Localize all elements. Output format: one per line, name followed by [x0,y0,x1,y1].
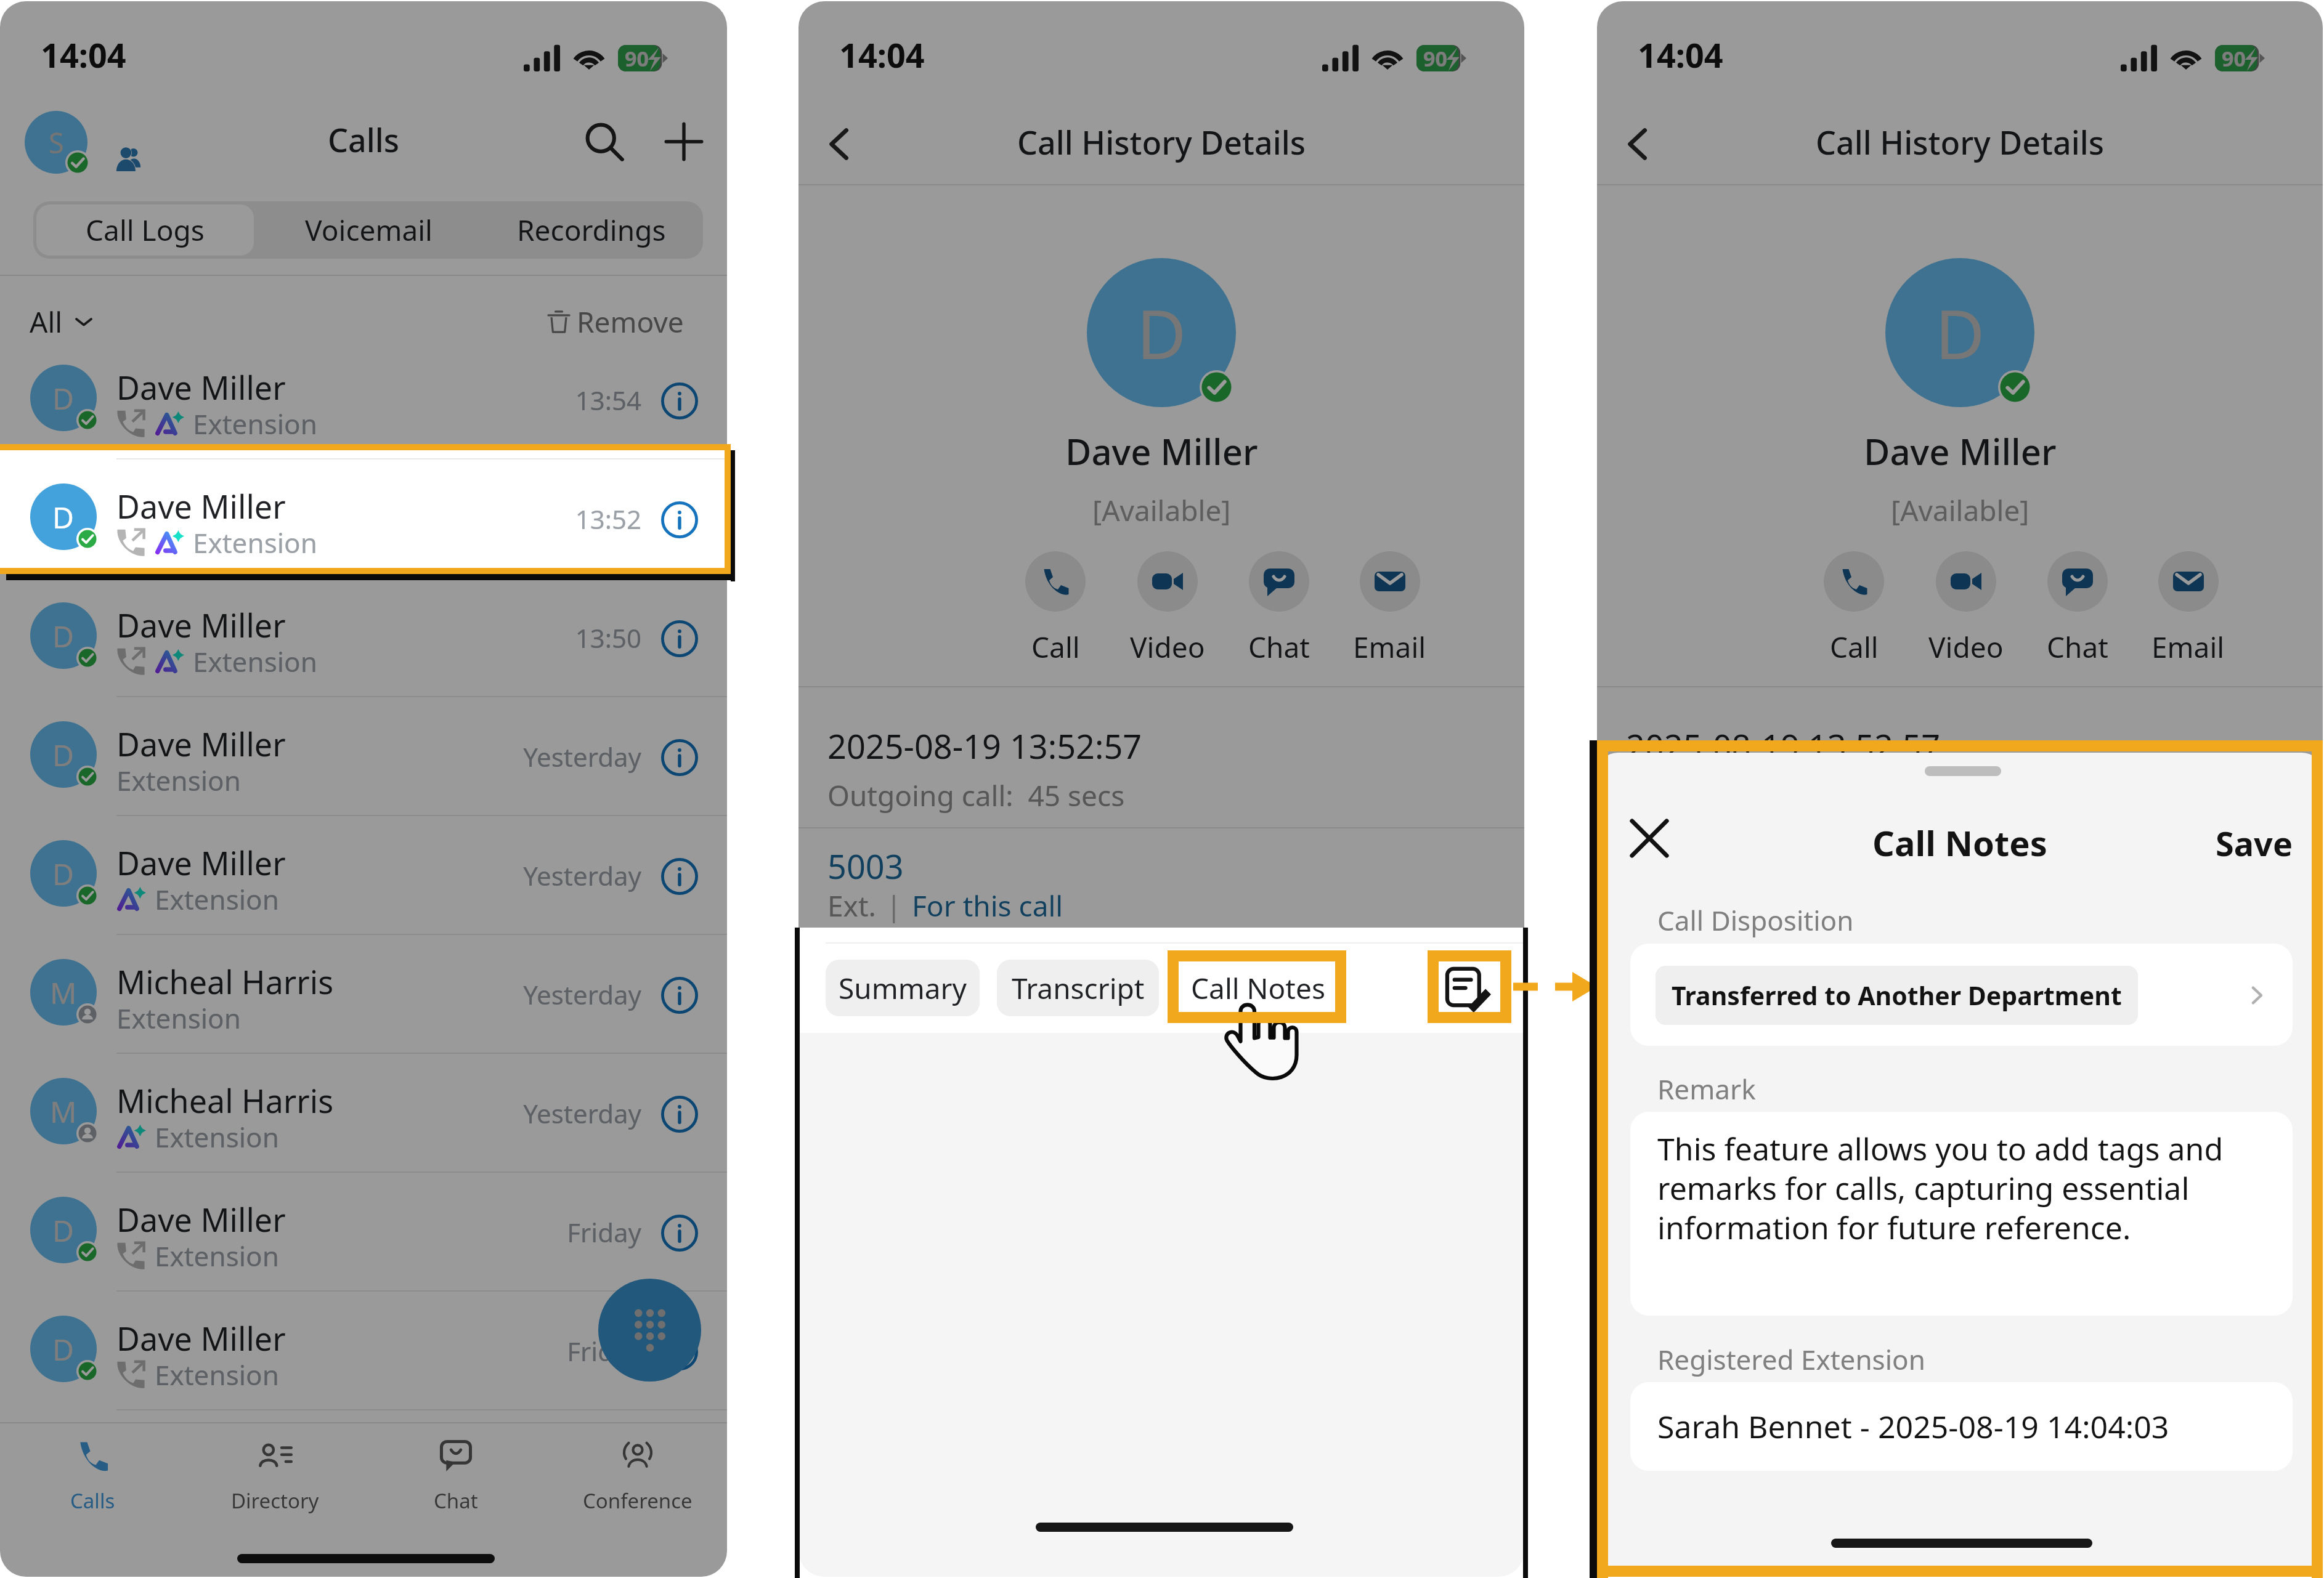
staticText: 13:54 [575,382,641,418]
button[interactable]: For this call [1710,886,1862,925]
staticText: 90 [1423,44,1447,71]
button[interactable]: D [0,459,727,578]
button[interactable]: Add [662,119,706,164]
button[interactable]: Video [1106,551,1229,666]
button[interactable]: This feature allows you to add tags and … [1630,1112,2293,1316]
staticText: For this call [1710,886,1862,925]
button[interactable]: Voicemail [260,204,477,256]
staticText: Dave Miller [116,1316,286,1360]
button[interactable]: Back [1614,119,1664,169]
staticText: Chat [1248,628,1310,666]
staticText: Extension [155,881,279,916]
button[interactable]: D [0,1173,727,1292]
staticText: Dave Miller [1864,427,2057,475]
button[interactable]: Call details [661,977,698,1014]
button[interactable]: Transcript [997,960,1159,1016]
staticText: Call Notes [1872,819,2047,866]
staticText: Conference [583,1487,693,1515]
staticText: D [52,378,75,418]
button[interactable]: Edit call notes [1433,955,1503,1025]
button[interactable]: Call Notes [1176,960,1340,1016]
button[interactable]: Remove [545,299,684,344]
staticText: Chat [2047,628,2108,666]
button[interactable]: Directory [207,1439,343,1544]
staticText: Dave Miller [116,722,286,766]
staticText: Yesterday [523,977,641,1012]
button[interactable]: Call details [661,620,698,657]
staticText: Remove [577,302,684,341]
staticText: D [52,616,75,656]
button[interactable]: Recordings [483,204,700,256]
button[interactable]: Email [1328,551,1451,666]
staticText: Call [1830,628,1879,666]
button[interactable]: Call Logs [36,204,254,256]
button[interactable]: Conference [570,1439,705,1544]
button[interactable]: Contacts [110,140,147,177]
staticText: Micheal Harris [116,960,334,1003]
staticText: Transferred to Another Department [1672,978,2122,1013]
button[interactable]: M [0,1054,727,1173]
button[interactable]: For this call [912,886,1063,925]
button[interactable]: Call details [661,382,698,419]
staticText: Ext. [1626,886,1675,925]
staticText: Extension [116,762,241,798]
button[interactable]: D [0,1292,727,1410]
button[interactable]: D [0,341,727,459]
button[interactable]: Call details [661,1096,698,1133]
button[interactable]: Chat [2016,551,2139,666]
staticText: Yesterday [523,858,641,893]
staticText: 13:52 [575,501,641,536]
staticText: D [1935,286,1985,379]
button[interactable]: D [0,578,727,697]
staticText: D [1137,286,1187,379]
button[interactable]: Video [1904,551,2028,666]
staticText: D [52,1210,75,1250]
staticText: Yesterday [523,1096,641,1131]
staticText: All [30,302,63,341]
staticText: Extension [193,643,317,679]
staticText: This feature allows you to add tags and … [1657,1128,2237,1248]
button[interactable]: Transferred to Another Department [1630,944,2293,1046]
button[interactable]: Summary [826,960,980,1016]
button[interactable]: Back [816,119,865,169]
staticText: Extension [155,1119,279,1154]
button[interactable]: D [0,697,727,816]
staticText: Dave Miller [116,484,286,528]
button[interactable]: Call details [661,1333,698,1370]
button[interactable]: All [30,299,96,344]
button[interactable]: Call details [661,1215,698,1252]
button[interactable]: Call details [661,501,698,538]
staticText: Call History Details [1816,120,2105,164]
button[interactable]: Call [994,551,1117,666]
staticText: Calls [328,118,400,161]
staticText: | [1684,886,1700,925]
staticText: 13:50 [575,620,641,655]
button[interactable]: Save [2182,820,2293,866]
button[interactable]: Email [2126,551,2249,666]
staticText: Save [2216,820,2293,866]
button[interactable]: Chat [388,1439,524,1544]
button[interactable]: D [0,816,727,935]
button[interactable]: Chat [1217,551,1341,666]
staticText: Extension [193,524,317,560]
staticText: Calls [70,1487,115,1515]
staticText: Extension [155,1237,279,1273]
staticText: Summary [839,969,967,1008]
staticText: 14:04 [41,32,126,78]
staticText: Email [1353,628,1426,666]
button[interactable]: Search [582,119,627,164]
staticText: Dave Miller [116,1197,286,1241]
button[interactable]: Call [1792,551,1916,666]
staticText: Email [2151,628,2225,666]
staticText: 5003 [1626,843,1702,889]
button[interactable]: Dialpad [598,1279,701,1382]
staticText: Voicemail [305,211,433,249]
staticText: Call Logs [86,211,205,249]
button[interactable]: Close [1627,815,1672,861]
staticText: S [49,124,64,161]
button[interactable]: M [0,935,727,1054]
staticText: Friday [567,1215,641,1250]
button[interactable]: Call details [661,858,698,895]
button[interactable]: Calls [25,1439,160,1544]
button[interactable]: Call details [661,739,698,776]
